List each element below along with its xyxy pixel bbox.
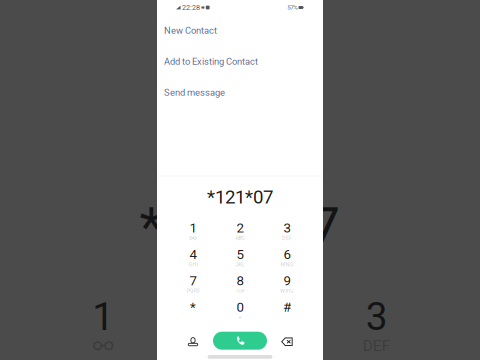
button[interactable]: 8 (216, 271, 263, 297)
staticText: *121*07 (207, 186, 273, 208)
staticText: WXYZ (280, 288, 294, 294)
staticText: 1 (92, 294, 114, 339)
button[interactable]: 3 (263, 218, 310, 244)
button[interactable]: Contacts (169, 323, 216, 360)
staticText: GHI (188, 261, 197, 267)
button[interactable]: New Contact (157, 15, 323, 46)
button[interactable]: 5 (216, 244, 263, 271)
button[interactable]: 1 (169, 218, 216, 244)
staticText: 3 (283, 220, 290, 236)
button[interactable]: 6 (263, 244, 310, 271)
button[interactable]: * (169, 297, 216, 323)
button[interactable]: Delete (263, 323, 310, 360)
staticText: *121*07 (139, 195, 340, 259)
button[interactable]: Call (216, 323, 263, 360)
button[interactable]: 1 (35, 287, 172, 360)
staticText: MNO (280, 261, 293, 267)
button[interactable]: Send message (157, 77, 323, 108)
button[interactable]: 2 (216, 218, 263, 244)
staticText: 2 (229, 294, 251, 339)
staticText: 22:28 (182, 3, 200, 12)
staticText: 3 (366, 294, 388, 339)
staticText: Add to Existing Contact (164, 56, 258, 67)
staticText: PQRS (186, 288, 199, 294)
button[interactable]: 2 (172, 287, 308, 360)
staticText: 57% (287, 4, 297, 11)
staticText: # (283, 299, 291, 315)
staticText: TUV (235, 288, 244, 294)
staticText: 7 (189, 273, 196, 289)
staticText: ABC (225, 337, 255, 355)
button[interactable]: # (263, 297, 310, 323)
staticText: 4 (189, 247, 196, 262)
staticText: JKL (235, 261, 244, 267)
button[interactable]: Add to Existing Contact (157, 46, 323, 77)
staticText: ABC (235, 235, 244, 241)
staticText: 8 (236, 273, 243, 289)
staticText: DEF (282, 235, 292, 241)
staticText: 2 (236, 220, 243, 236)
button[interactable]: 7 (169, 271, 216, 297)
staticText: 0 (236, 299, 243, 315)
button[interactable]: 3 (308, 287, 445, 360)
staticText: 9 (283, 273, 290, 289)
button[interactable]: 4 (169, 244, 216, 271)
button[interactable]: 0 (216, 297, 263, 323)
staticText: + (238, 314, 241, 320)
staticText: * (190, 299, 196, 315)
staticText: 5 (236, 247, 243, 262)
staticText: Send message (164, 87, 225, 98)
staticText: DEF (363, 337, 391, 355)
staticText: 1 (189, 220, 196, 236)
staticText: New Contact (164, 25, 217, 36)
staticText: 6 (283, 247, 290, 262)
button[interactable]: 9 (263, 271, 310, 297)
